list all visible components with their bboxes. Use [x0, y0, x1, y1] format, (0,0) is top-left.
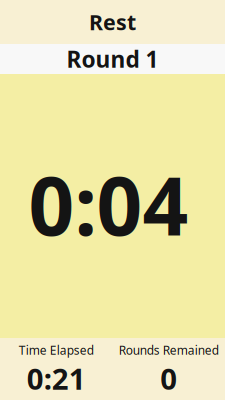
staticText: Rest [89, 7, 136, 37]
staticText: Time Elapsed [19, 342, 94, 358]
staticText: 0:04 [28, 150, 188, 259]
staticText: 0 [160, 358, 177, 398]
staticText: Rounds Remained [119, 342, 219, 358]
button[interactable]: Rest [0, 0, 225, 44]
button[interactable]: 0:04 [0, 74, 225, 338]
staticText: 0:21 [27, 358, 86, 398]
staticText: Round 1 [66, 44, 158, 74]
